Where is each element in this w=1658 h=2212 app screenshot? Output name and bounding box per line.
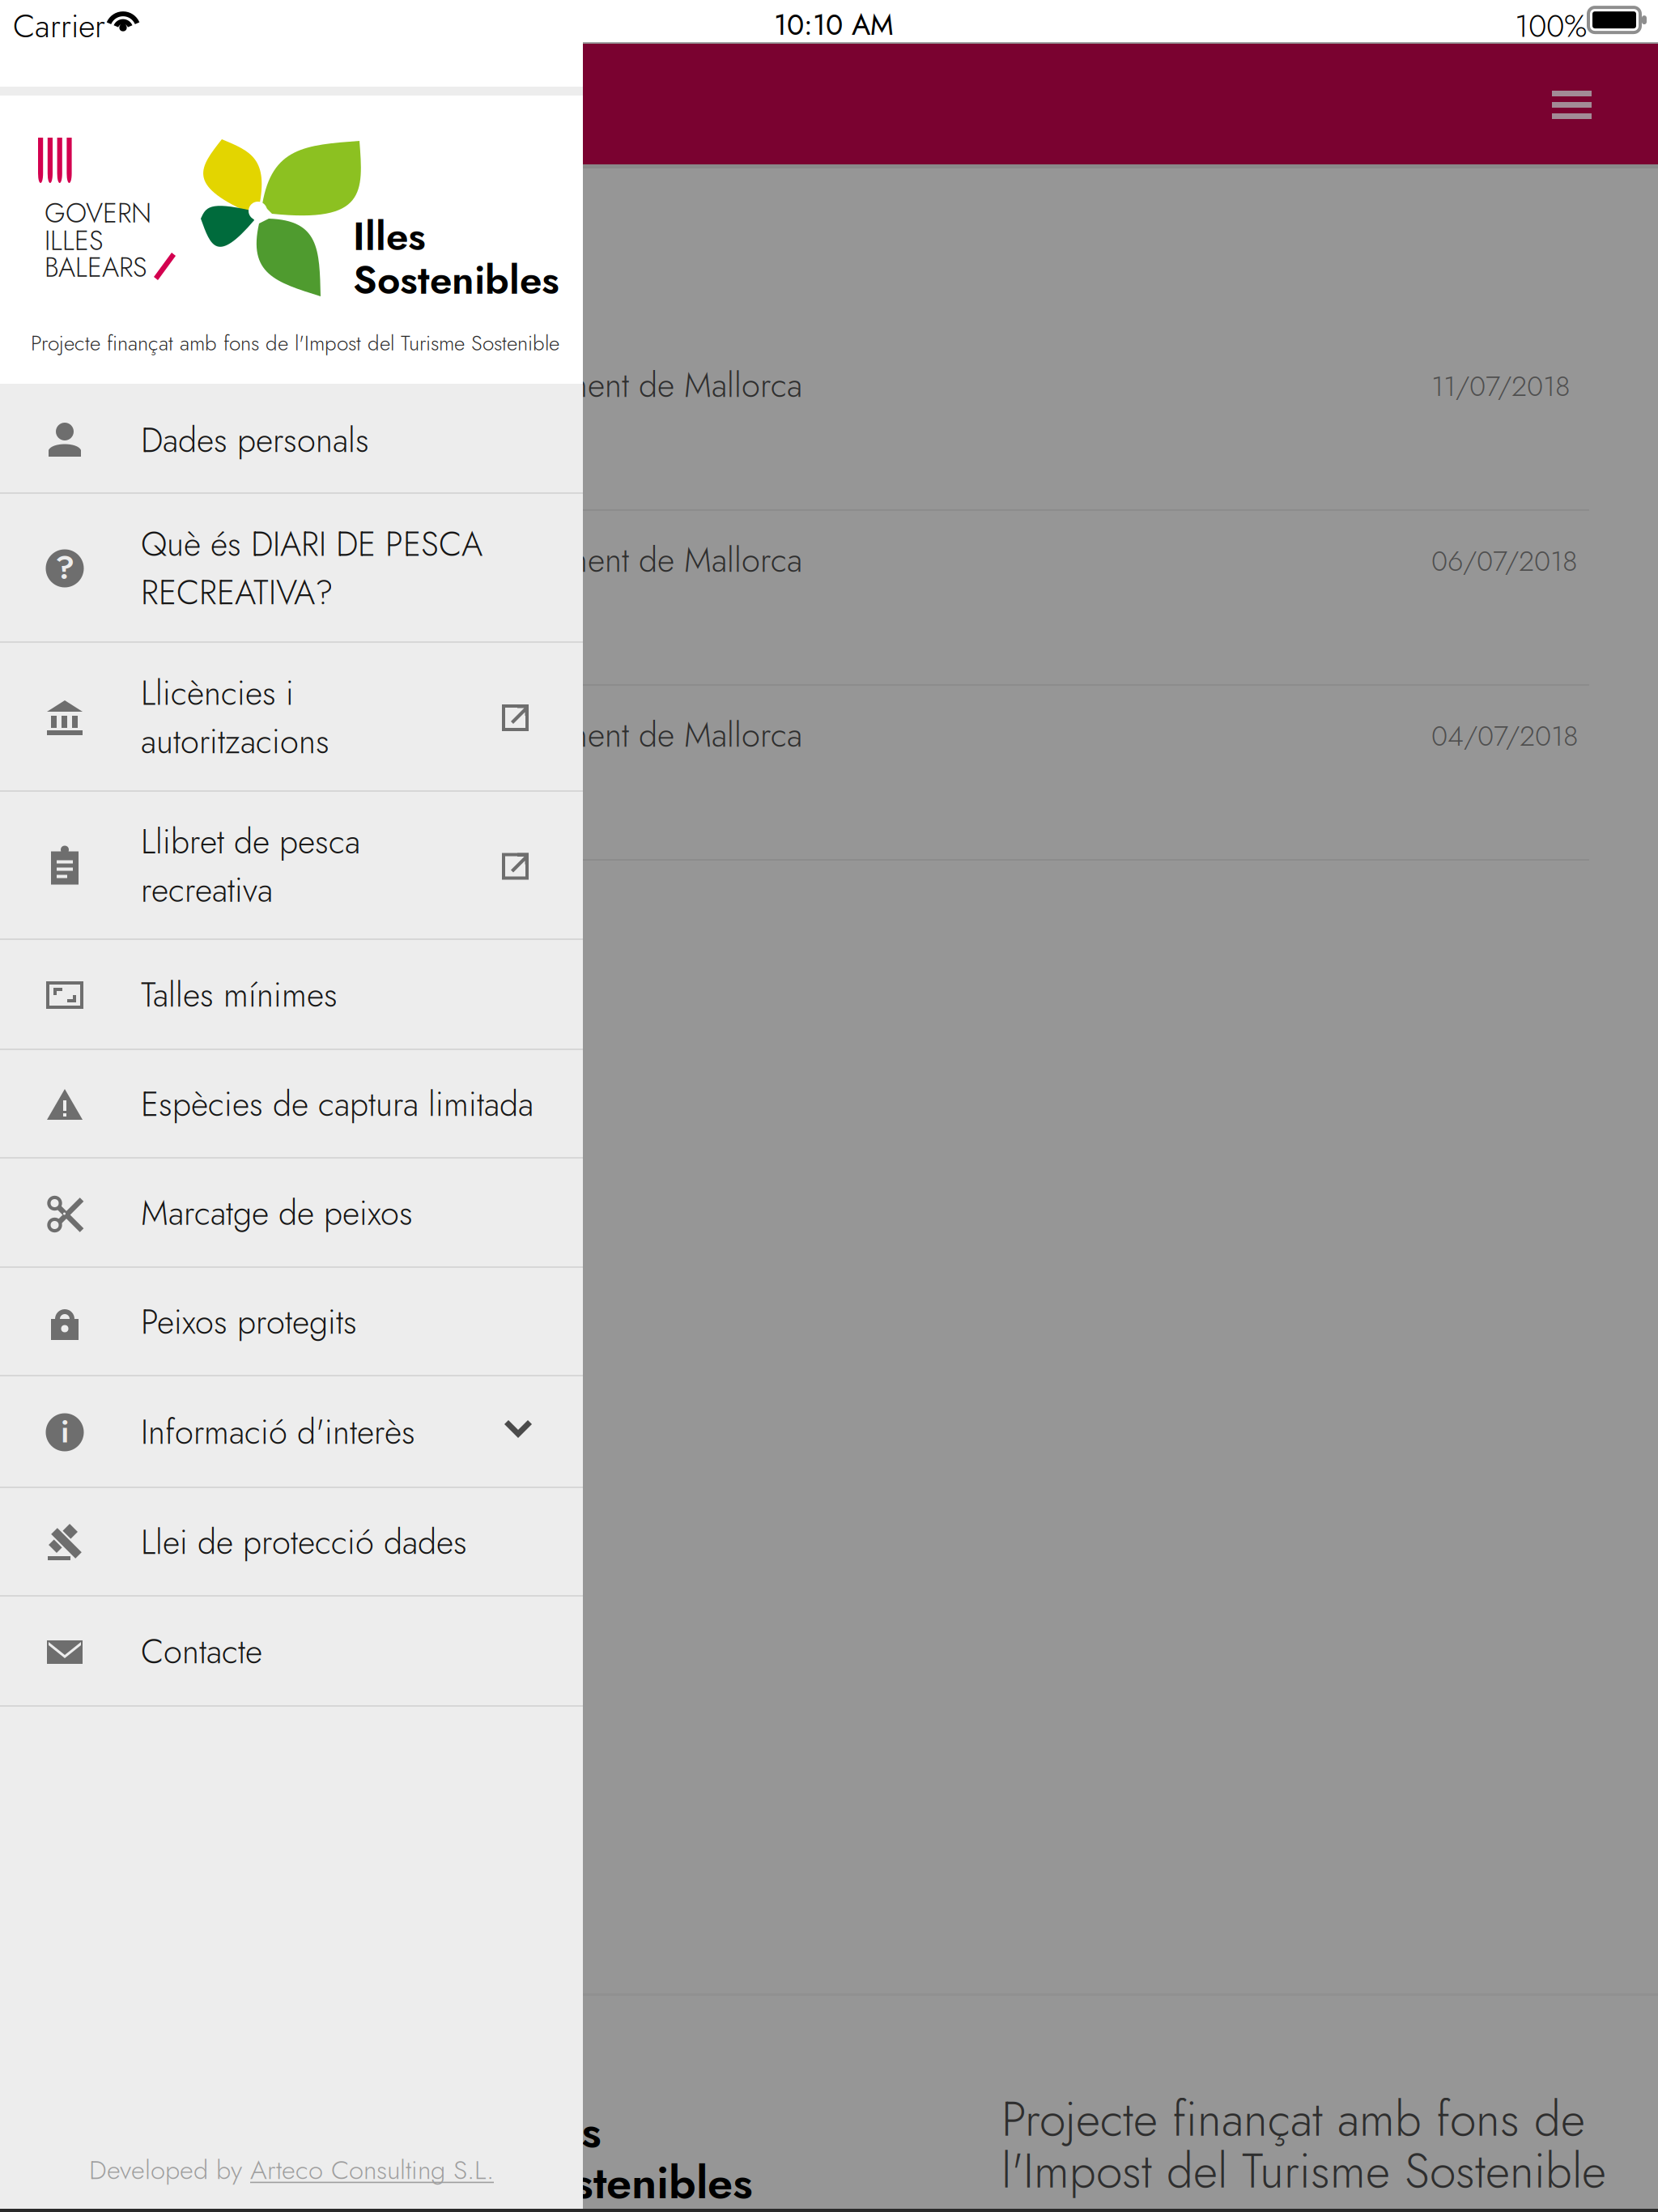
staticText: Illes xyxy=(520,2099,602,2164)
staticText: GOVERN xyxy=(45,194,151,233)
staticText: Carrier xyxy=(13,3,105,49)
button[interactable]: Llibret de pesca xyxy=(0,792,583,940)
button[interactable]: Ajuntament de Mallorca xyxy=(0,511,1658,686)
button[interactable]: Menu xyxy=(1516,71,1629,138)
staticText: Què és DIARI DE PESCA xyxy=(141,520,483,568)
staticText: Informació d'interès xyxy=(141,1408,415,1456)
staticText: Illes xyxy=(353,207,426,265)
staticText: 06/07/2018 xyxy=(1431,541,1578,581)
button[interactable]: Peixos protegits xyxy=(0,1268,583,1376)
staticText: Llibret de pesca xyxy=(141,818,360,866)
button[interactable]: Talles mínimes xyxy=(0,940,583,1050)
button[interactable]: Dades personals xyxy=(0,387,583,494)
button[interactable]: Llei de protecció dades xyxy=(0,1488,583,1597)
staticText: Developed by xyxy=(89,2151,250,2189)
staticText: 100% xyxy=(1515,3,1587,49)
staticText: Ajuntament de Mallorca xyxy=(478,711,802,759)
staticText: Projecte finançat amb fons de xyxy=(1001,2085,1585,2154)
staticText: Llicències i xyxy=(141,669,294,717)
staticText: ? xyxy=(55,544,74,591)
button[interactable]: i xyxy=(0,1376,583,1488)
staticText: Marcatge de peixos xyxy=(141,1189,413,1237)
staticText: Sostenibles xyxy=(353,251,559,309)
staticText: 10:10 AM xyxy=(774,4,894,46)
staticText: 11/07/2018 xyxy=(1431,366,1571,407)
staticText: Espècies de captura limitada xyxy=(141,1080,534,1129)
staticText: Llei de protecció dades xyxy=(141,1518,467,1567)
staticText: recreativa xyxy=(141,866,273,914)
staticText: Sostenibles xyxy=(520,2150,753,2212)
button[interactable]: ? xyxy=(0,494,583,643)
staticText: Arteco Consulting S.L. xyxy=(250,2151,494,2189)
staticText: autoritzacions xyxy=(141,717,329,766)
staticText: ILLES xyxy=(45,221,103,260)
staticText: Ajuntament de Mallorca xyxy=(478,361,802,409)
staticText: 04/07/2018 xyxy=(1431,716,1579,756)
staticText: RECREATIVA? xyxy=(141,568,334,617)
staticText: Contacte xyxy=(141,1628,262,1676)
button[interactable]: Developed by xyxy=(0,2128,583,2212)
staticText: Peixos protegits xyxy=(141,1298,357,1346)
staticText: Ajuntament de Mallorca xyxy=(478,536,802,584)
staticText: BALEARS xyxy=(45,248,147,287)
staticText: Projecte finançat amb fons de l'Impost d… xyxy=(31,328,559,358)
button[interactable]: Ajuntament de Mallorca xyxy=(0,336,1658,511)
staticText: l'Impost del Turisme Sostenible xyxy=(1001,2137,1606,2205)
staticText: Talles mínimes xyxy=(141,971,338,1019)
button[interactable]: Espècies de captura limitada xyxy=(0,1050,583,1159)
button[interactable]: Contacte xyxy=(0,1597,583,1707)
staticText: Dades personals xyxy=(141,416,369,465)
staticText: i xyxy=(61,1409,69,1454)
button[interactable]: Ajuntament de Mallorca xyxy=(0,686,1658,861)
button[interactable]: Marcatge de peixos xyxy=(0,1159,583,1268)
button[interactable]: Llicències i xyxy=(0,643,583,792)
